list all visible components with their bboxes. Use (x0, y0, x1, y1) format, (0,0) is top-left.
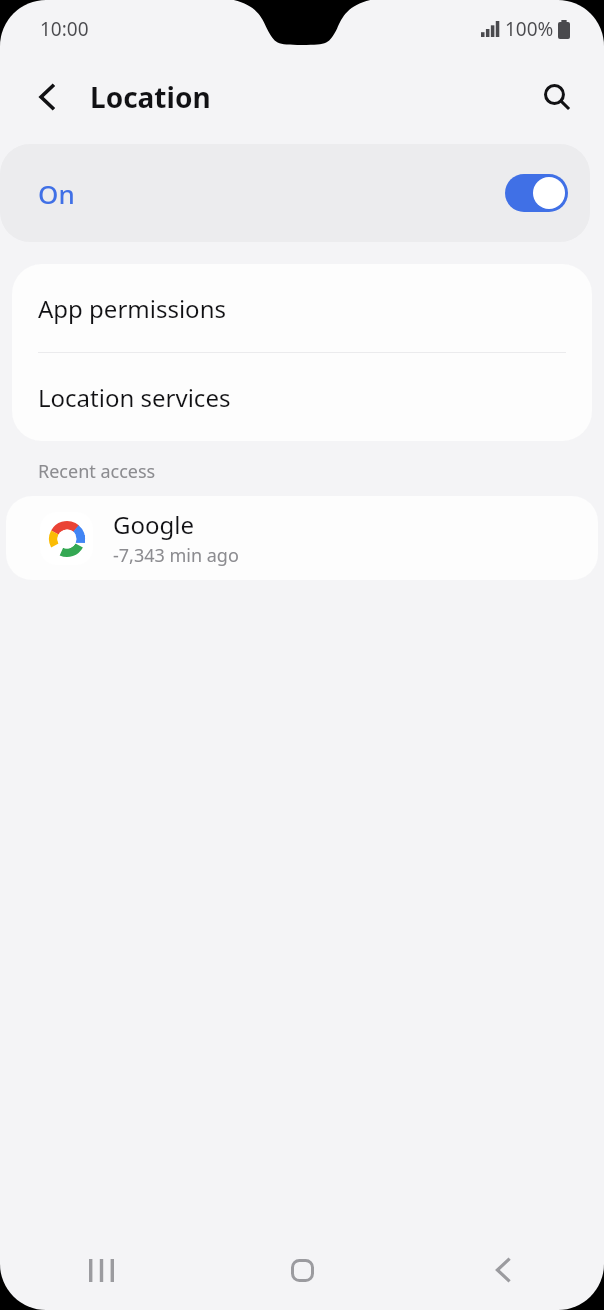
staticText: App permissions (38, 292, 226, 325)
staticText: Location services (38, 381, 231, 414)
button[interactable]: Location services (12, 353, 592, 441)
button[interactable]: Navigate up (22, 72, 72, 122)
button[interactable]: Search (532, 72, 582, 122)
button[interactable]: Home (202, 1230, 403, 1310)
button[interactable]: Google (6, 496, 598, 580)
staticText: Recent access (38, 459, 156, 484)
button[interactable]: Recent apps (0, 1230, 202, 1310)
staticText: -7,343 min ago (113, 543, 239, 568)
staticText: On (38, 176, 75, 211)
staticText: Location (90, 78, 211, 116)
button[interactable]: Back (403, 1230, 604, 1310)
staticText: 10:00 (40, 16, 89, 42)
button[interactable]: On (0, 144, 590, 242)
staticText: Google (113, 508, 194, 541)
staticText: 100% (505, 16, 554, 42)
button[interactable]: App permissions (12, 264, 592, 352)
